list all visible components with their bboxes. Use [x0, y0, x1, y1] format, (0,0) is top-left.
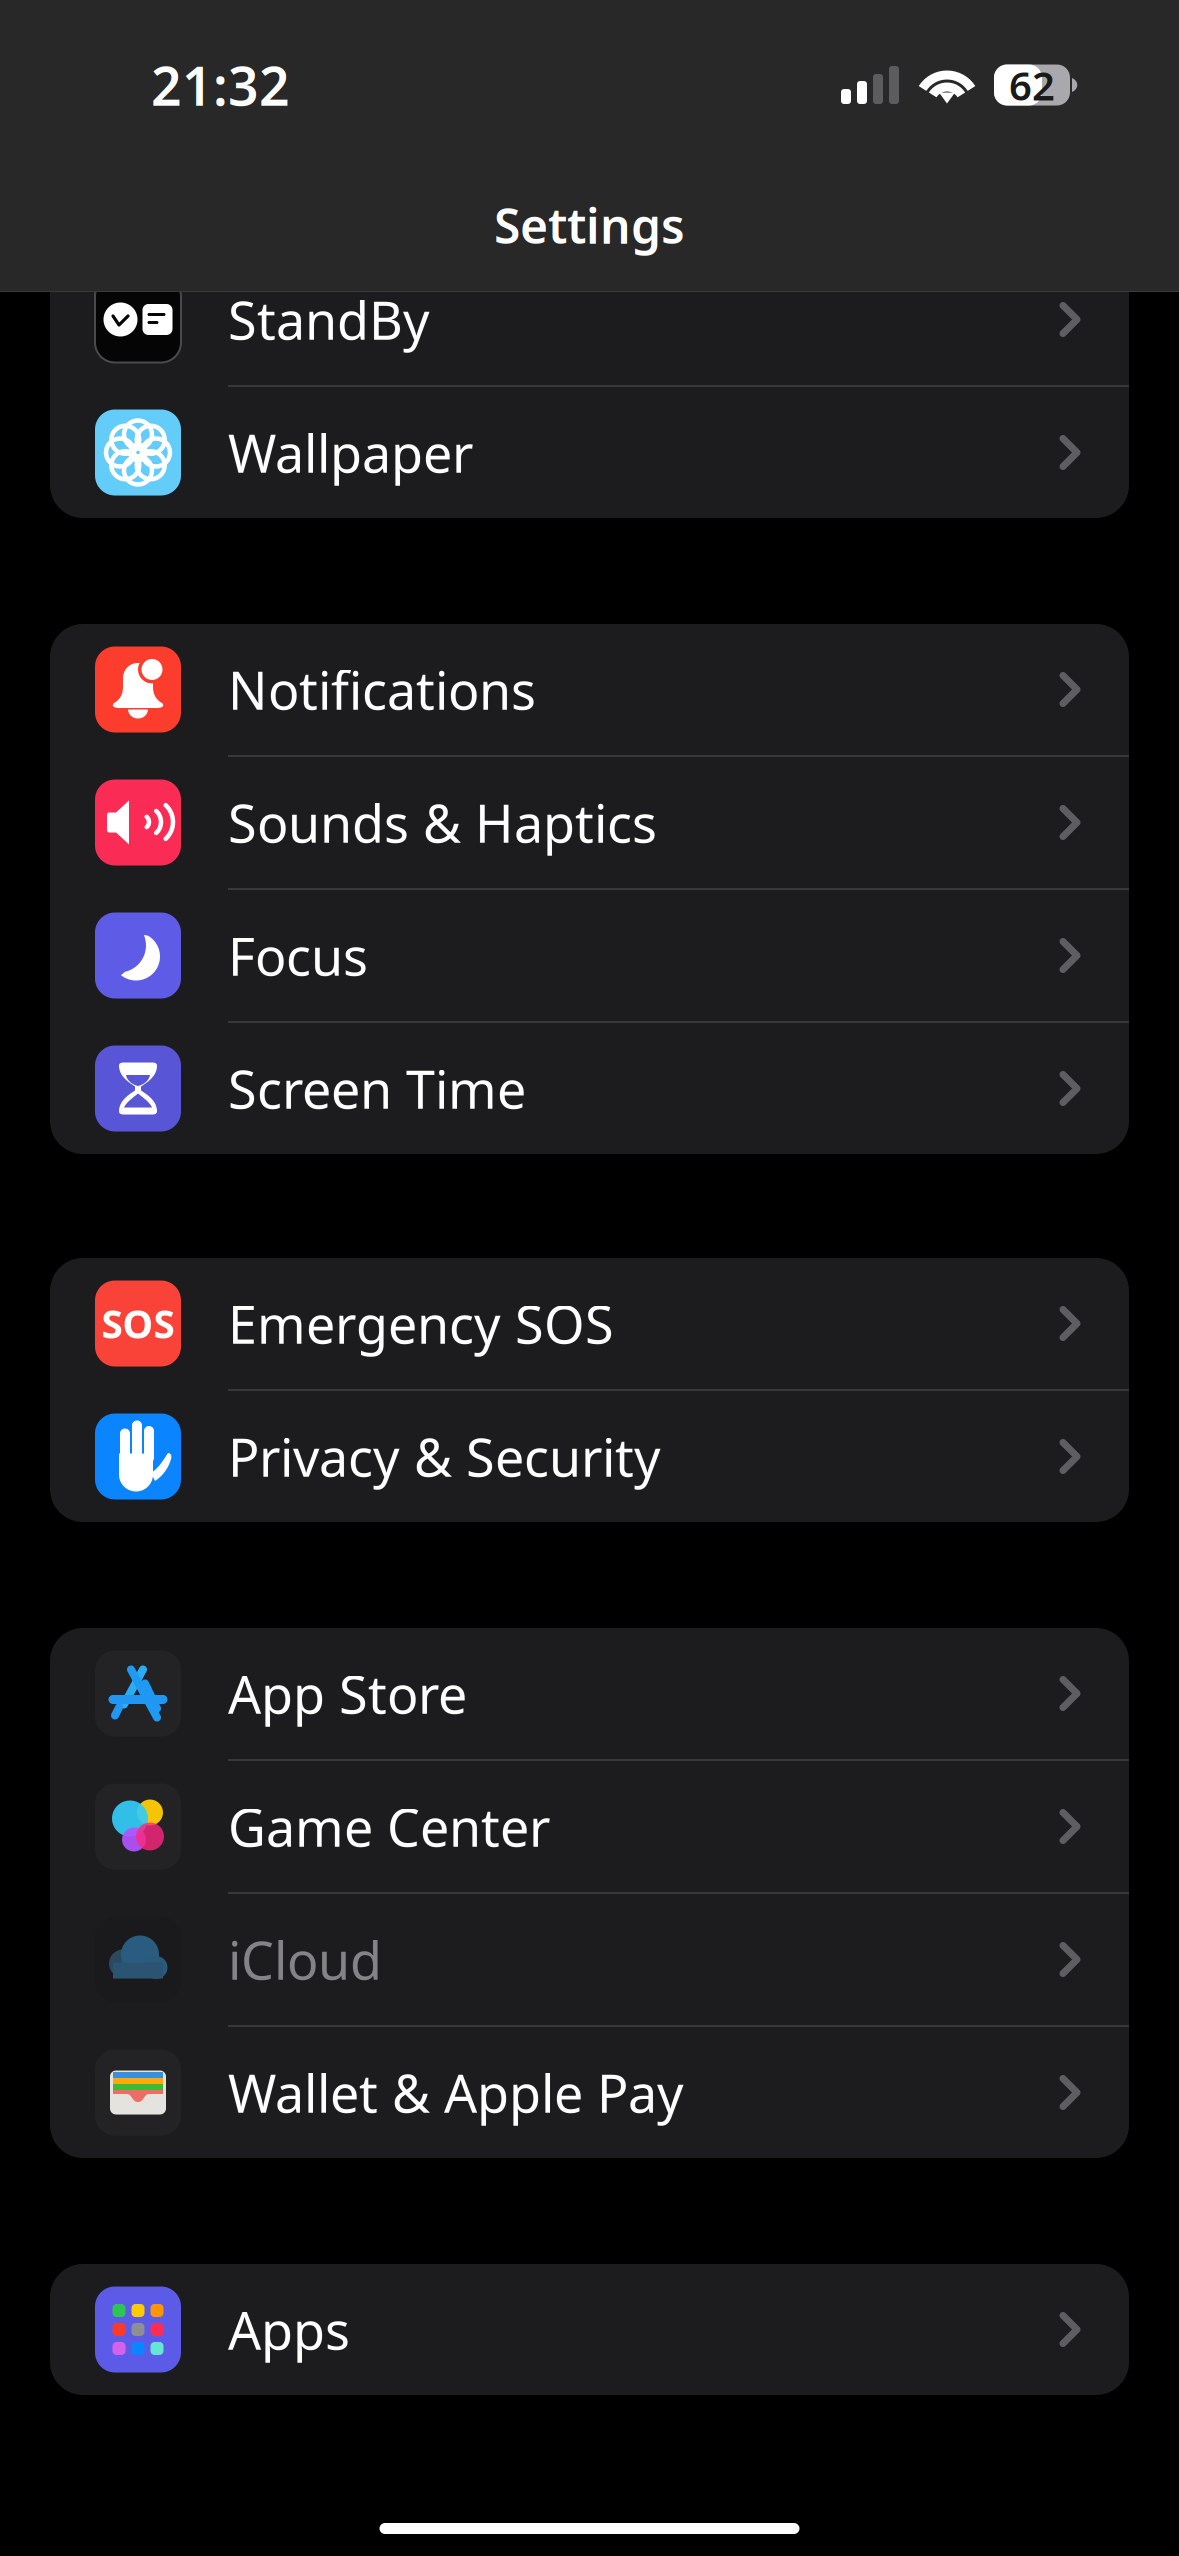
button[interactable]: Wallet & Apple Pay	[50, 2027, 1129, 2158]
button[interactable]: Notifications	[50, 624, 1129, 755]
staticText: 62	[1009, 58, 1055, 111]
button[interactable]: SOS	[50, 1258, 1129, 1389]
staticText: Focus	[228, 921, 368, 990]
staticText: Wallpaper	[228, 418, 473, 487]
staticText: SOS	[101, 1298, 174, 1349]
staticText: Notifications	[228, 655, 536, 724]
staticText: Sounds & Haptics	[228, 788, 657, 857]
button[interactable]: App Store	[50, 1628, 1129, 1759]
staticText: Privacy & Security	[228, 1422, 661, 1491]
staticText: Settings	[494, 193, 685, 257]
staticText: Screen Time	[228, 1054, 526, 1123]
button[interactable]: Wallpaper	[50, 387, 1129, 518]
staticText: App Store	[228, 1659, 467, 1728]
button[interactable]: Apps	[50, 2264, 1129, 2395]
staticText: Game Center	[228, 1792, 550, 1861]
button[interactable]: iCloud	[50, 1894, 1129, 2025]
staticText: 21:32	[151, 50, 290, 120]
button[interactable]: Screen Time	[50, 1023, 1129, 1154]
button[interactable]: Sounds & Haptics	[50, 757, 1129, 888]
button[interactable]: Game Center	[50, 1761, 1129, 1892]
staticText: Apps	[228, 2295, 350, 2364]
button[interactable]: Focus	[50, 890, 1129, 1021]
staticText: Emergency SOS	[228, 1289, 614, 1358]
staticText: iCloud	[228, 1925, 382, 1994]
button[interactable]: Privacy & Security	[50, 1391, 1129, 1522]
staticText: StandBy	[228, 285, 430, 354]
staticText: Wallet & Apple Pay	[228, 2058, 684, 2127]
button[interactable]: StandBy	[50, 254, 1129, 385]
